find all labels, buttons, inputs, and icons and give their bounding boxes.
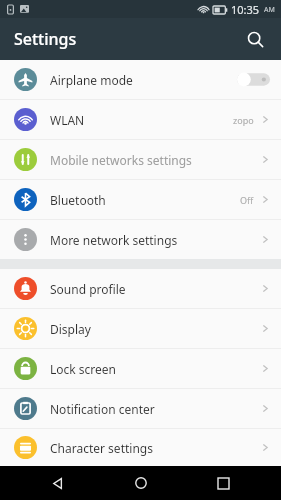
button[interactable]: Back (34, 466, 82, 500)
staticText: AM (264, 5, 275, 15)
staticText: Airplane mode (50, 72, 237, 88)
button[interactable]: WLAN (0, 100, 281, 139)
staticText: Character settings (50, 440, 261, 456)
button[interactable]: Airplane mode (0, 60, 281, 99)
button[interactable]: Character settings (0, 429, 281, 466)
button[interactable]: Mobile networks settings (0, 140, 281, 179)
staticText: Off (240, 194, 254, 206)
staticText: Lock screen (50, 361, 261, 377)
staticText: Sound profile (50, 281, 261, 297)
staticText: Settings (14, 28, 77, 50)
button[interactable]: Search (239, 23, 271, 55)
button[interactable]: Bluetooth (0, 180, 281, 219)
button[interactable]: Sound profile (0, 269, 281, 308)
staticText: 10:35 (231, 2, 260, 17)
staticText: Mobile networks settings (50, 152, 261, 168)
button[interactable]: Display (0, 309, 281, 348)
staticText: Bluetooth (50, 192, 240, 208)
staticText: WLAN (50, 112, 233, 128)
staticText: More network settings (50, 232, 261, 248)
button[interactable]: Home (117, 466, 165, 500)
button[interactable]: More network settings (0, 220, 281, 259)
button[interactable]: Recents (199, 466, 247, 500)
staticText: Display (50, 321, 261, 337)
button[interactable]: Notification center (0, 389, 281, 428)
staticText: zopo (233, 114, 254, 126)
button[interactable]: Lock screen (0, 349, 281, 388)
staticText: Notification center (50, 401, 261, 417)
